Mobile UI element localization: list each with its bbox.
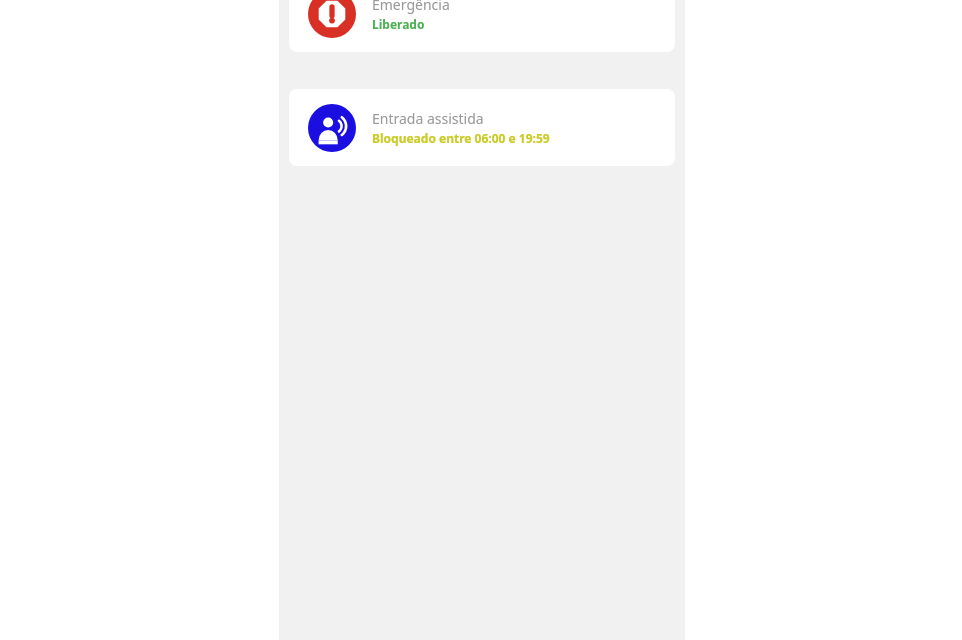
staticText: Liberado [372,16,425,32]
staticText: Bloqueado entre 06:00 e 19:59 [372,130,550,146]
button[interactable]: Entrada assistida [289,89,675,166]
staticText: Entrada assistida [372,109,484,128]
staticText: Emergência [372,0,450,14]
other: Emergência [308,0,356,38]
other: Entrada assistida [308,104,356,152]
button[interactable]: Emergência [289,0,675,52]
